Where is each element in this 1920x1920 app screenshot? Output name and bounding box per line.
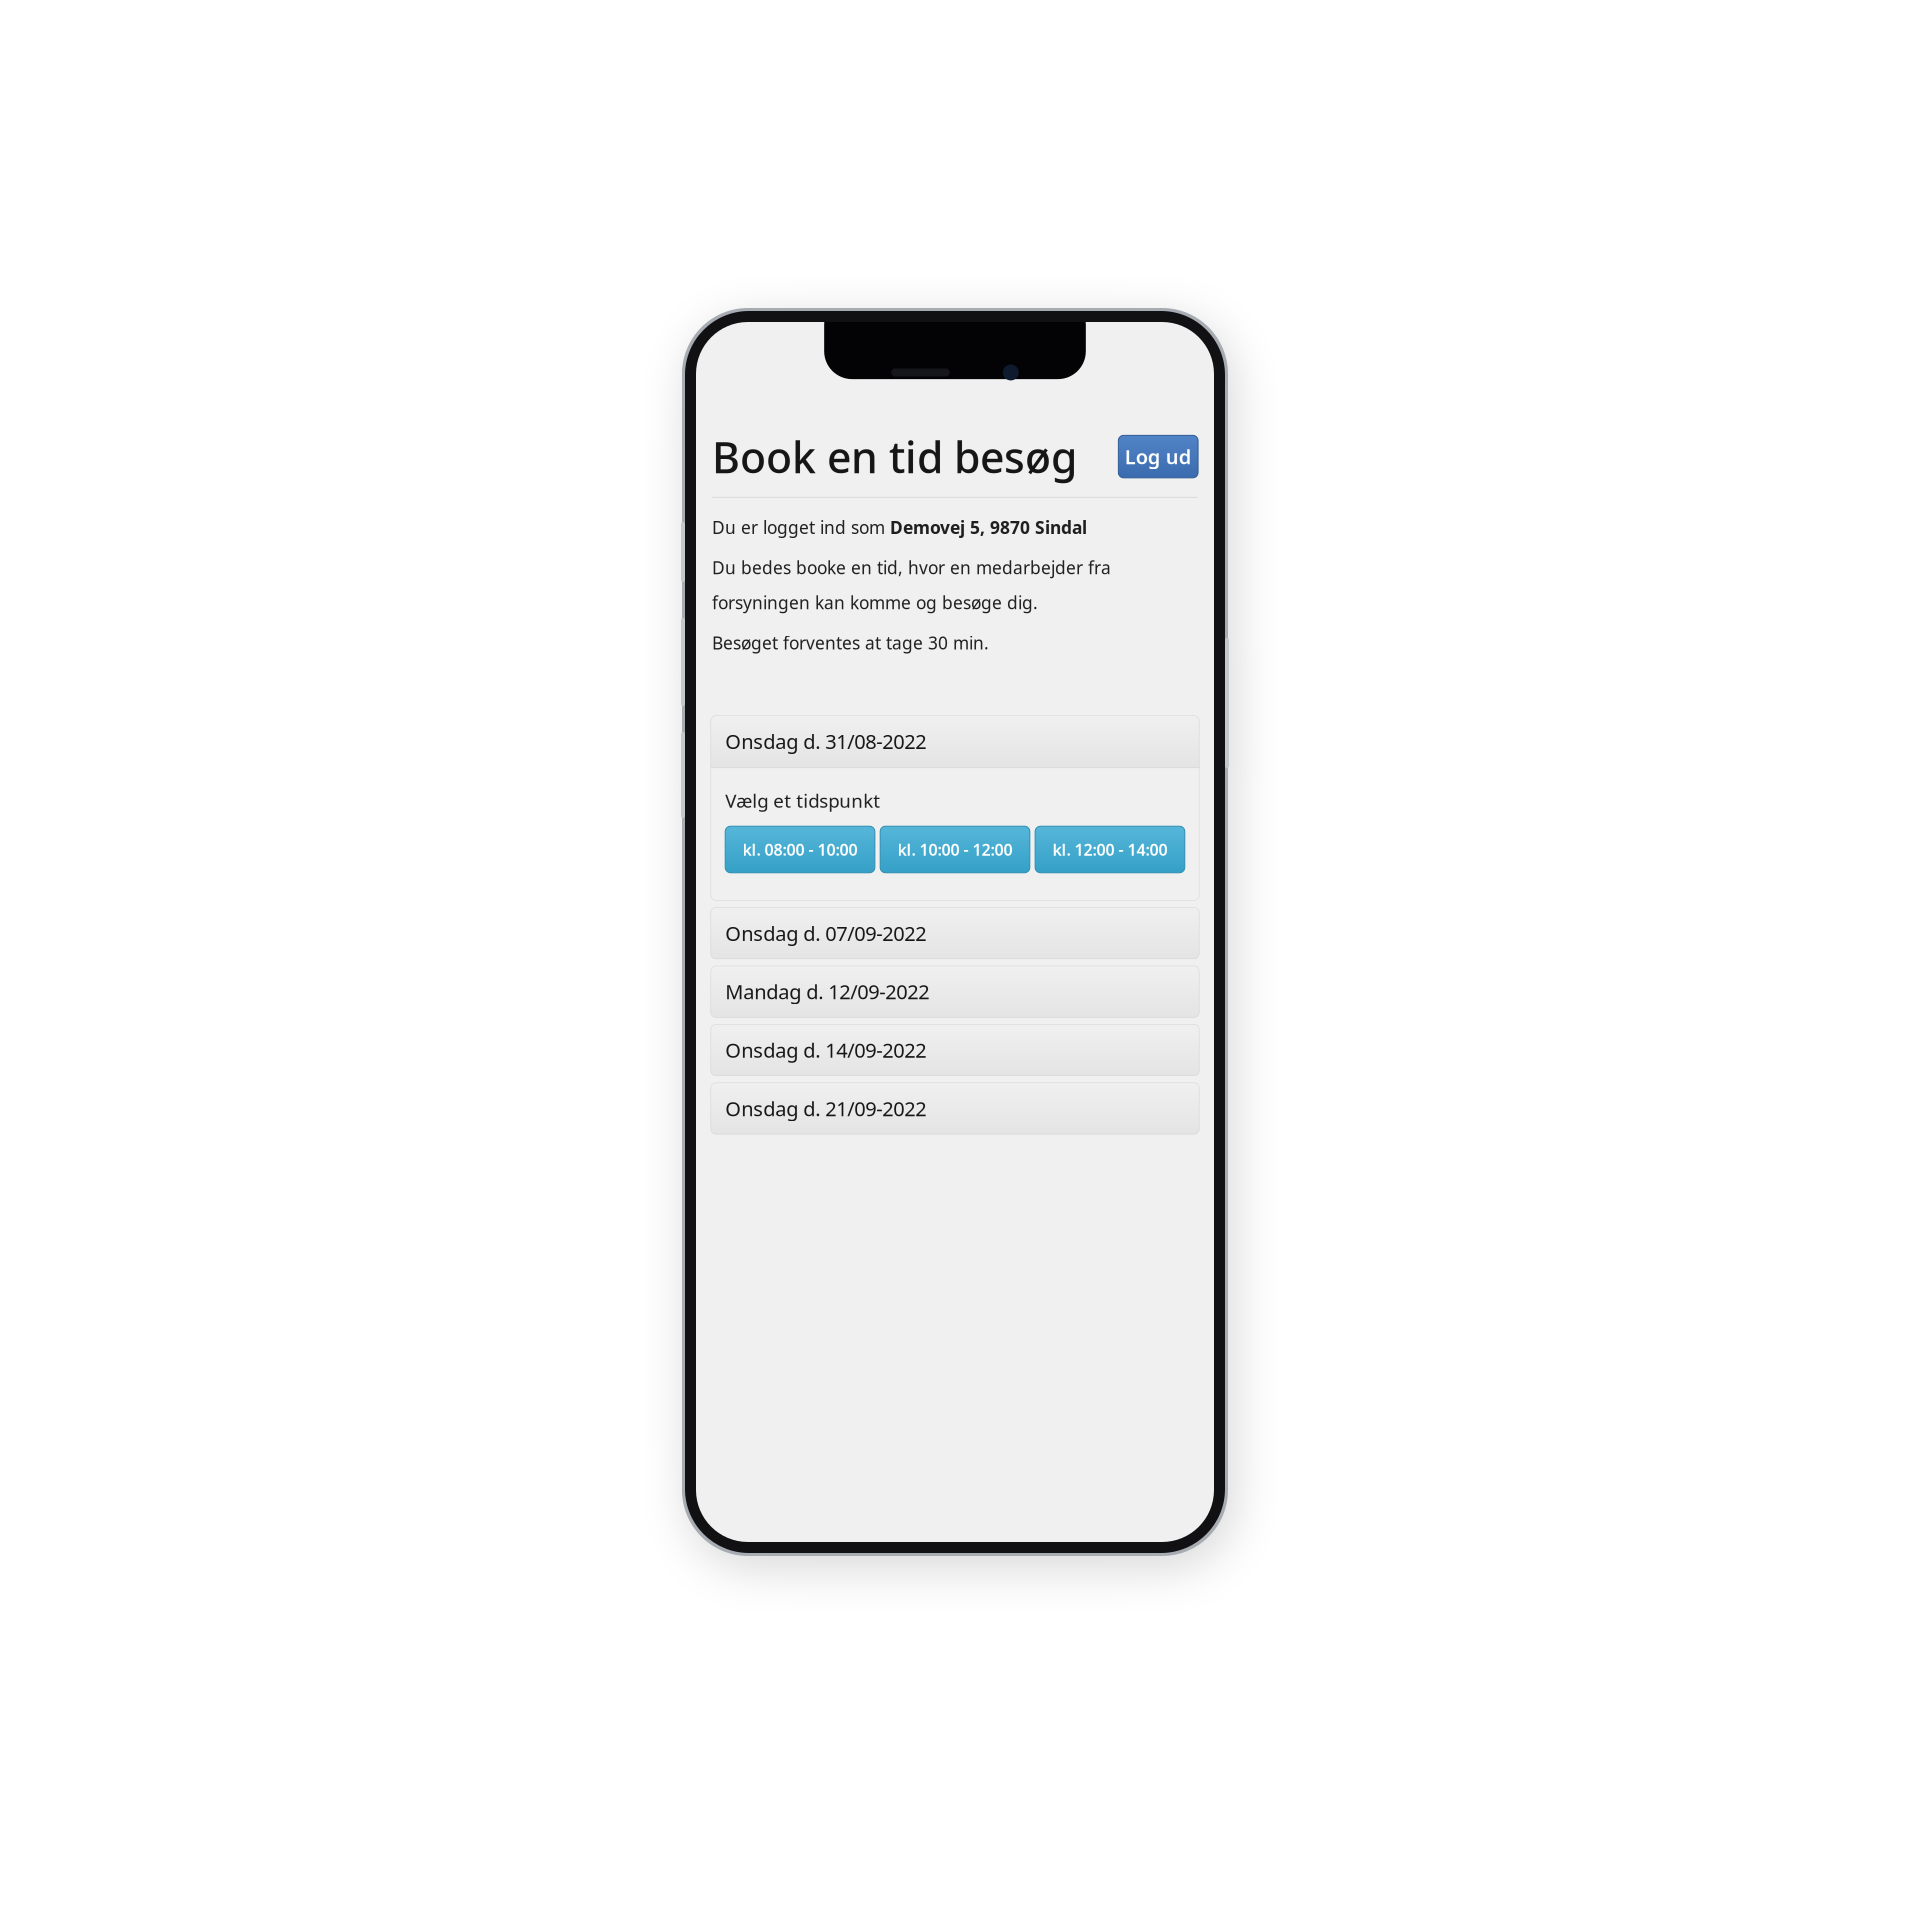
button[interactable]: Onsdag d. 07/09-2022	[711, 907, 1199, 959]
button[interactable]: Mandag d. 12/09-2022	[711, 966, 1199, 1017]
staticText: Log ud	[1125, 443, 1192, 470]
button[interactable]: kl. 12:00 - 14:00	[1035, 826, 1185, 873]
staticText: Onsdag d. 14/09-2022	[725, 1037, 926, 1063]
staticText: Besøget forventes at tage 30 min.	[712, 631, 989, 654]
button[interactable]: kl. 10:00 - 12:00	[880, 826, 1030, 873]
staticText: kl. 08:00 - 10:00	[742, 839, 857, 860]
button[interactable]: kl. 08:00 - 10:00	[725, 826, 875, 873]
staticText: Du bedes booke en tid, hvor en medarbejd…	[712, 556, 1111, 614]
staticText: Onsdag d. 31/08-2022	[725, 728, 926, 755]
button[interactable]: Log ud	[1118, 435, 1198, 478]
staticText: Book en tid besøg	[712, 428, 1077, 485]
staticText: Du er logget ind som Demovej 5, 9870 Sin…	[712, 516, 1087, 539]
button[interactable]: Onsdag d. 14/09-2022	[711, 1024, 1199, 1076]
staticText: kl. 10:00 - 12:00	[897, 839, 1012, 860]
staticText: Vælg et tidspunkt	[725, 788, 880, 813]
staticText: kl. 12:00 - 14:00	[1052, 839, 1167, 860]
staticText: Onsdag d. 07/09-2022	[725, 920, 926, 946]
staticText: Mandag d. 12/09-2022	[725, 978, 929, 1005]
button[interactable]: Onsdag d. 21/09-2022	[711, 1083, 1199, 1134]
staticText: Onsdag d. 21/09-2022	[725, 1095, 926, 1122]
button[interactable]: Onsdag d. 31/08-2022	[711, 715, 1199, 767]
